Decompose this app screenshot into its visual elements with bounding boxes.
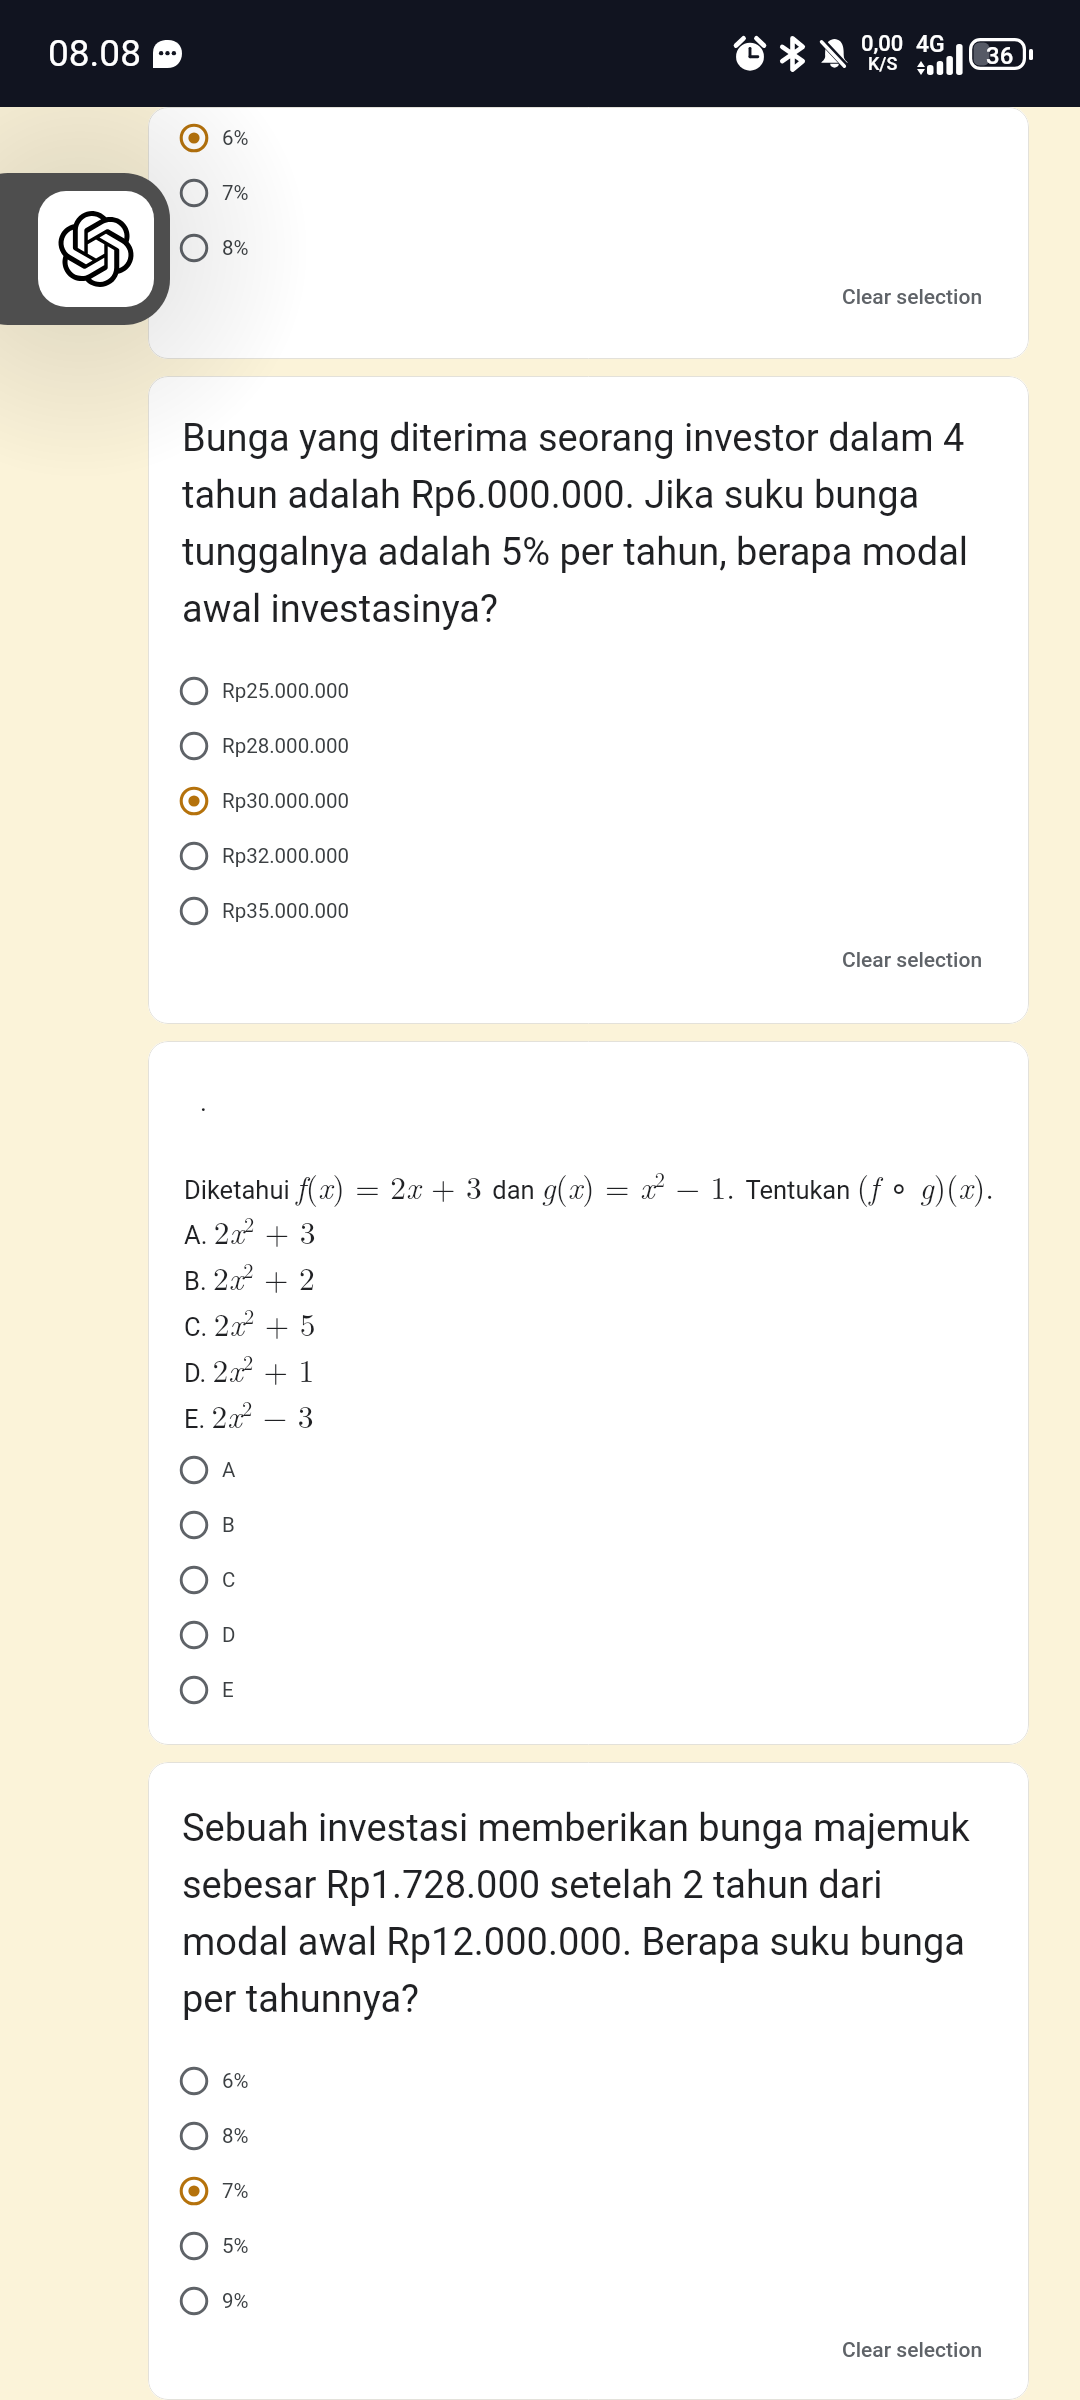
staticText: 0,00	[861, 31, 904, 57]
staticText: A. 2x2 + 3	[184, 1208, 316, 1253]
staticText: 6%	[222, 126, 249, 150]
button[interactable]: B	[148, 1497, 1029, 1552]
button[interactable]: Clear selection	[822, 938, 1029, 983]
staticText: 36	[986, 42, 1014, 70]
staticText: Clear selection	[842, 2338, 983, 2363]
staticText: Rp32.000.000	[222, 844, 350, 868]
staticText: D	[222, 1623, 236, 1647]
staticText: Rp28.000.000	[222, 734, 350, 758]
button[interactable]: 6%	[148, 110, 1029, 165]
button[interactable]: D	[148, 1607, 1029, 1662]
button[interactable]: C	[148, 1552, 1029, 1607]
staticText: 8%	[222, 2124, 249, 2148]
staticText: E. 2x2 − 3	[184, 1392, 314, 1437]
button[interactable]: 9%	[148, 2273, 1029, 2328]
staticText: B. 2x2 + 2	[184, 1254, 315, 1299]
button[interactable]: 7%	[148, 165, 1029, 220]
staticText: 6%	[222, 2069, 249, 2093]
staticText: Sebuah investasi memberikan bunga majemu…	[182, 1806, 987, 2021]
button[interactable]: ChatGPT assistant	[0, 173, 170, 325]
button[interactable]: Rp25.000.000	[148, 663, 1029, 718]
button[interactable]: Rp32.000.000	[148, 828, 1029, 883]
staticText: D. 2x2 + 1	[184, 1346, 315, 1391]
button[interactable]: Rp30.000.000	[148, 773, 1029, 828]
button[interactable]: 5%	[148, 2218, 1029, 2273]
staticText: B	[222, 1513, 235, 1537]
staticText: 8%	[222, 236, 249, 260]
staticText: 7%	[222, 2179, 249, 2203]
staticText: A	[222, 1458, 236, 1482]
staticText: E	[222, 1678, 234, 1702]
button[interactable]: Clear selection	[822, 2328, 1029, 2373]
staticText: Rp25.000.000	[222, 679, 350, 703]
staticText: C	[222, 1568, 236, 1592]
staticText: Rp30.000.000	[222, 789, 350, 813]
button[interactable]: Rp35.000.000	[148, 883, 1029, 938]
button[interactable]: 7%	[148, 2163, 1029, 2218]
staticText: 4G	[916, 31, 945, 58]
staticText: K/S	[868, 53, 898, 74]
staticText: Clear selection	[842, 285, 983, 310]
button[interactable]: E	[148, 1662, 1029, 1717]
button[interactable]: 6%	[148, 2053, 1029, 2108]
button[interactable]: Rp28.000.000	[148, 718, 1029, 773]
staticText: 9%	[222, 2289, 249, 2313]
staticText: C. 2x2 + 5	[184, 1300, 316, 1345]
staticText: Diketahui f(x) = 2x + 3 dan g(x) = x2 − …	[184, 1163, 994, 1208]
button[interactable]: 8%	[148, 220, 1029, 275]
staticText: ·	[200, 1095, 207, 1125]
staticText: Bunga yang diterima seorang investor dal…	[182, 416, 987, 631]
staticText: Clear selection	[842, 948, 983, 973]
staticText: Rp35.000.000	[222, 899, 350, 923]
button[interactable]: A	[148, 1442, 1029, 1497]
staticText: 08.08	[48, 32, 141, 75]
button[interactable]: Clear selection	[822, 275, 1029, 320]
button[interactable]: 8%	[148, 2108, 1029, 2163]
staticText: 7%	[222, 181, 249, 205]
staticText: 5%	[222, 2234, 249, 2258]
